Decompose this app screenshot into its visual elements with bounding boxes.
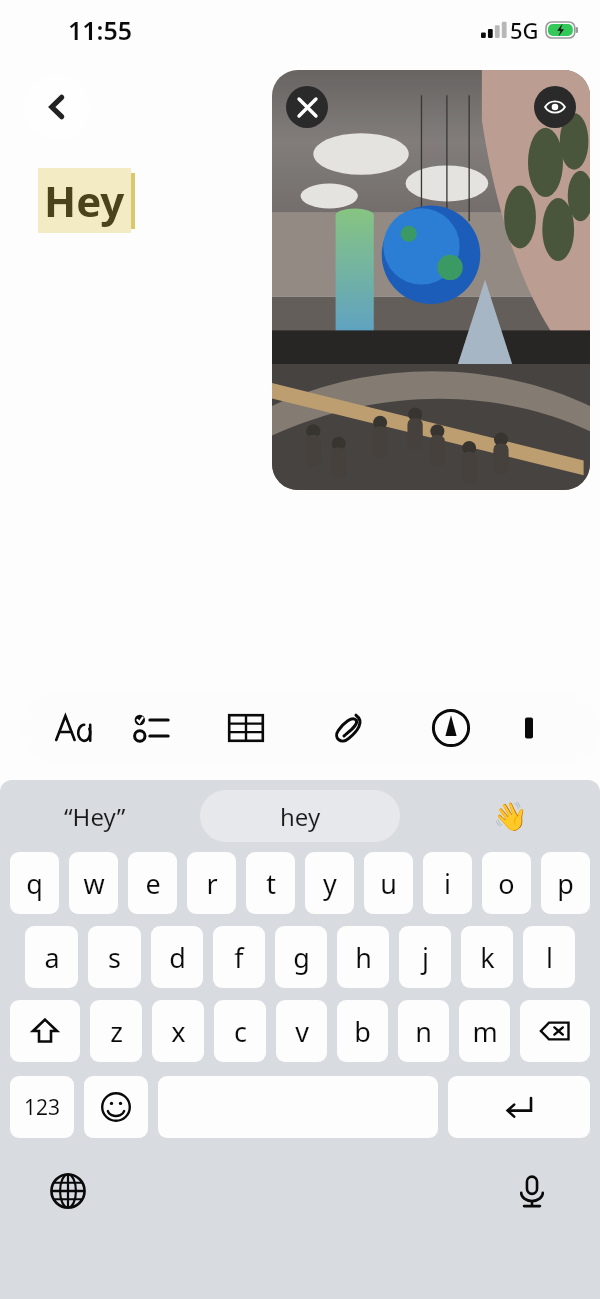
button[interactable]: p bbox=[541, 852, 590, 914]
staticText: 👋 bbox=[493, 800, 528, 833]
button[interactable]: o bbox=[482, 852, 531, 914]
button[interactable]: Preview bbox=[534, 86, 576, 128]
staticText: d bbox=[169, 939, 186, 976]
button[interactable]: t bbox=[246, 852, 295, 914]
staticText: b bbox=[354, 1013, 371, 1050]
staticText: 123 bbox=[24, 1093, 61, 1122]
button[interactable]: s bbox=[88, 926, 141, 988]
button[interactable]: g bbox=[275, 926, 327, 988]
staticText: q bbox=[26, 865, 43, 902]
button[interactable]: r bbox=[187, 852, 236, 914]
button[interactable]: Back bbox=[24, 74, 90, 140]
button[interactable]: z bbox=[90, 1000, 142, 1062]
staticText: h bbox=[355, 939, 372, 976]
button[interactable]: e bbox=[128, 852, 177, 914]
button[interactable]: i bbox=[423, 852, 472, 914]
staticText: z bbox=[110, 1013, 123, 1050]
staticText: s bbox=[108, 939, 121, 976]
button[interactable]: h bbox=[337, 926, 389, 988]
button[interactable]: w bbox=[69, 852, 118, 914]
button[interactable]: k bbox=[461, 926, 513, 988]
button[interactable]: Emoji bbox=[84, 1076, 148, 1138]
staticText: j bbox=[422, 939, 429, 976]
staticText: l bbox=[546, 939, 553, 976]
staticText: 5G bbox=[510, 15, 539, 45]
button[interactable]: Attach bbox=[296, 693, 400, 763]
staticText: Hey bbox=[44, 172, 125, 229]
button[interactable]: “Hey” bbox=[0, 780, 190, 852]
staticText: w bbox=[83, 865, 105, 902]
button[interactable] bbox=[272, 70, 590, 490]
staticText: “Hey” bbox=[64, 800, 126, 833]
staticText: m bbox=[472, 1013, 498, 1050]
button[interactable]: u bbox=[364, 852, 413, 914]
button[interactable]: Change keyboard bbox=[40, 1163, 96, 1219]
button[interactable]: Shift bbox=[10, 1000, 80, 1062]
button[interactable]: j bbox=[399, 926, 451, 988]
button[interactable]: More bbox=[502, 693, 556, 763]
staticText: i bbox=[444, 865, 451, 902]
staticText: t bbox=[266, 865, 276, 902]
button[interactable]: a bbox=[25, 926, 78, 988]
staticText: hey bbox=[280, 800, 321, 833]
button[interactable]: Table bbox=[196, 693, 296, 763]
staticText: g bbox=[293, 939, 310, 976]
staticText: u bbox=[380, 865, 397, 902]
button[interactable]: n bbox=[398, 1000, 449, 1062]
button[interactable]: v bbox=[276, 1000, 327, 1062]
button[interactable]: d bbox=[151, 926, 203, 988]
staticText: r bbox=[206, 865, 218, 902]
button[interactable]: b bbox=[337, 1000, 388, 1062]
button[interactable]: x bbox=[152, 1000, 204, 1062]
staticText: e bbox=[145, 865, 161, 902]
button[interactable]: l bbox=[523, 926, 575, 988]
staticText: p bbox=[557, 865, 574, 902]
button[interactable]: c bbox=[214, 1000, 266, 1062]
staticText: a bbox=[44, 939, 60, 976]
staticText: 11:55 bbox=[68, 13, 133, 47]
staticText: n bbox=[415, 1013, 432, 1050]
staticText: o bbox=[498, 865, 515, 902]
button[interactable]: Return bbox=[448, 1076, 590, 1138]
staticText: v bbox=[295, 1013, 309, 1050]
button[interactable]: y bbox=[305, 852, 354, 914]
staticText: x bbox=[171, 1013, 186, 1050]
button[interactable]: Delete bbox=[520, 1000, 590, 1062]
button[interactable]: q bbox=[10, 852, 59, 914]
button[interactable]: 👋 bbox=[420, 780, 600, 852]
button[interactable]: Text format bbox=[40, 693, 110, 763]
button[interactable]: 123 bbox=[10, 1076, 74, 1138]
button[interactable]: Markup bbox=[400, 693, 502, 763]
button[interactable]: hey bbox=[200, 790, 400, 842]
staticText: k bbox=[480, 939, 495, 976]
button[interactable]: Close bbox=[286, 86, 328, 128]
button[interactable]: f bbox=[213, 926, 265, 988]
staticText: f bbox=[234, 939, 244, 976]
button[interactable]: Checklist bbox=[110, 693, 196, 763]
button[interactable]: Dictate bbox=[504, 1163, 560, 1219]
button[interactable]: m bbox=[459, 1000, 510, 1062]
staticText: y bbox=[323, 865, 337, 902]
staticText: c bbox=[234, 1013, 247, 1050]
